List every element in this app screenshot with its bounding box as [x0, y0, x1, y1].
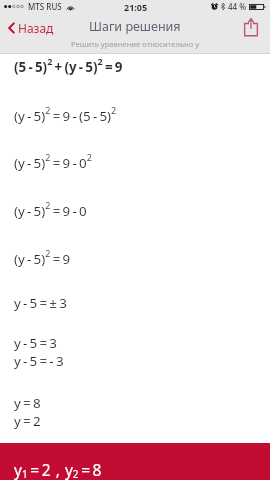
staticText: (y - 5)2 = 9 - 0 [14, 199, 87, 219]
staticText: y - 5 = - 3 [14, 352, 64, 370]
staticText: (y - 5)2 = 9 - 02 [14, 151, 92, 171]
button[interactable]: Назад [4, 16, 62, 40]
staticText: y = 2 [14, 412, 41, 430]
button[interactable]: Поделиться [236, 16, 266, 40]
staticText: 21:05 [124, 1, 148, 13]
staticText: MTS RUS [28, 1, 62, 12]
staticText: y1 = 2 , y2 = 8 [14, 459, 102, 480]
staticText: Назад [18, 20, 54, 36]
staticText: (5 - 5)2 + (y - 5)2 = 9 [14, 55, 123, 75]
staticText: Шаги решения [89, 18, 181, 35]
staticText: 44 % [228, 1, 247, 12]
button[interactable]: y1 = 2 , y2 = 8 [0, 443, 270, 480]
staticText: Решить уравнение относительно y [71, 39, 200, 49]
staticText: (y - 5)2 = 9 - (5 - 5)2 [14, 104, 117, 124]
staticText: y - 5 = ± 3 [14, 294, 67, 312]
staticText: y - 5 = 3 [14, 334, 58, 352]
staticText: y = 8 [14, 394, 41, 412]
staticText: (y - 5)2 = 9 [14, 247, 71, 267]
